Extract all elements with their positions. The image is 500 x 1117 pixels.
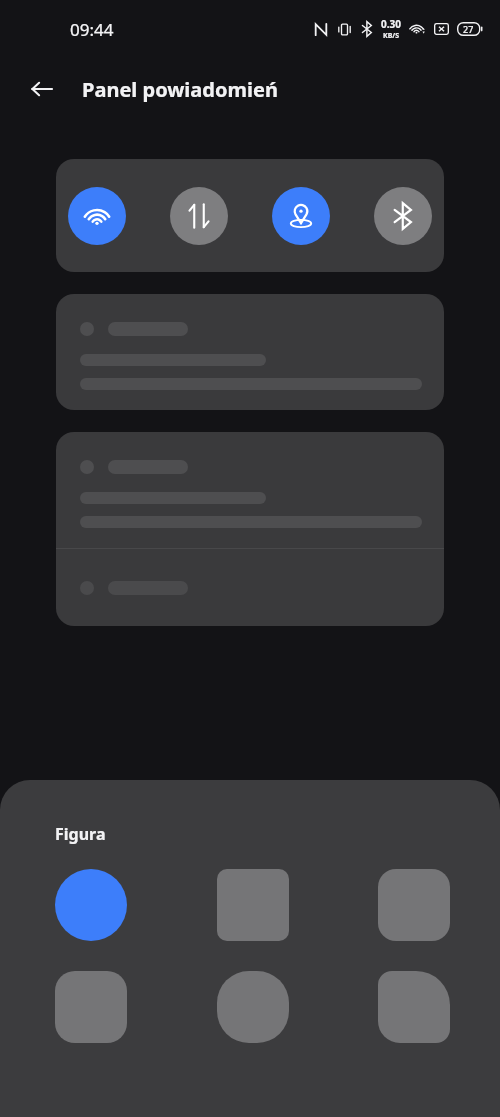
button[interactable]: Shape xyxy=(217,971,289,1043)
staticText: 27 xyxy=(463,23,474,35)
button[interactable]: Shape xyxy=(55,971,127,1043)
button[interactable]: Notification xyxy=(56,549,444,626)
button[interactable]: Location xyxy=(272,187,330,245)
staticText: 09:44 xyxy=(70,18,114,41)
button[interactable]: Notification xyxy=(56,432,444,548)
staticText: 0.30 xyxy=(381,17,401,31)
button[interactable]: Wi-Fi xyxy=(68,187,126,245)
button[interactable]: Bluetooth xyxy=(374,187,432,245)
staticText: Panel powiadomień xyxy=(82,76,278,103)
staticText: KB/S xyxy=(383,31,400,41)
button[interactable]: Shape xyxy=(217,869,289,941)
button[interactable]: Back xyxy=(16,63,68,115)
staticText: Figura xyxy=(55,823,106,845)
button[interactable]: Notification xyxy=(56,294,444,410)
button[interactable]: Shape xyxy=(378,971,450,1043)
button[interactable]: Shape xyxy=(378,869,450,941)
button[interactable]: Mobile data xyxy=(170,187,228,245)
button[interactable]: Shape xyxy=(55,869,127,941)
